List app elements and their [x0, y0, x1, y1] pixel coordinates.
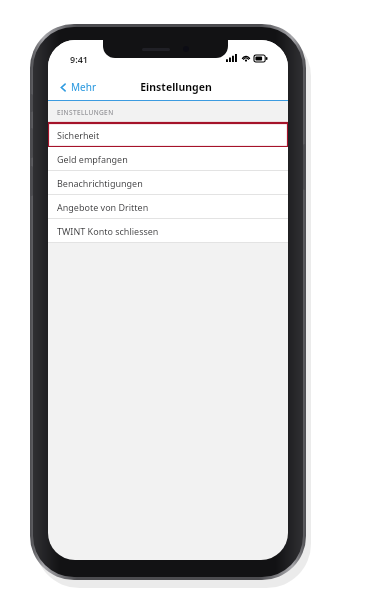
button[interactable]: Sicherheit	[48, 123, 288, 147]
button[interactable]: Angebote von Dritten	[48, 195, 288, 219]
button[interactable]: Mehr	[56, 78, 100, 96]
button[interactable]: TWINT Konto schliessen	[48, 219, 288, 243]
staticText: Einstellungen	[82, 80, 270, 94]
staticText: Mehr	[71, 80, 97, 94]
staticText: TWINT Konto schliessen	[57, 225, 159, 237]
staticText: Geld empfangen	[57, 153, 128, 165]
button[interactable]: Benachrichtigungen	[48, 171, 288, 195]
staticText: 9:41	[70, 53, 88, 65]
staticText: Sicherheit	[57, 129, 100, 141]
staticText: Angebote von Dritten	[57, 201, 149, 213]
staticText: Benachrichtigungen	[57, 177, 143, 189]
staticText: EINSTELLUNGEN	[57, 108, 114, 117]
button[interactable]: Geld empfangen	[48, 147, 288, 171]
